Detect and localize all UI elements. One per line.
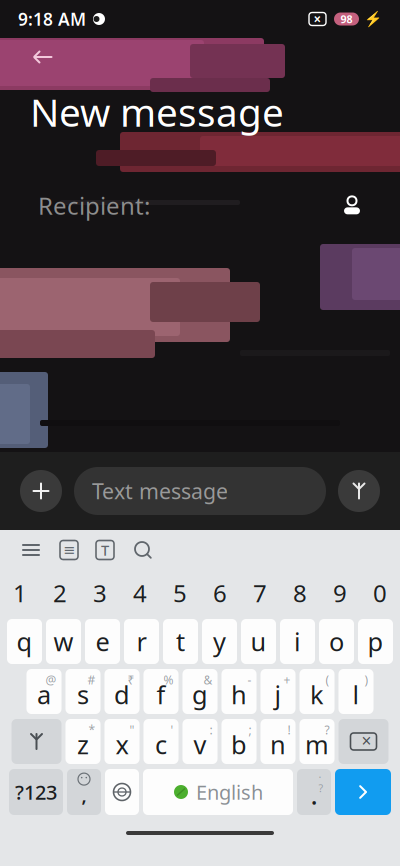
- staticText: v: [193, 728, 206, 761]
- button[interactable]: -: [221, 669, 256, 714]
- staticText: f: [156, 678, 165, 711]
- button[interactable]: Send: [335, 769, 391, 815]
- button[interactable]: %: [143, 669, 178, 714]
- staticText: 1: [13, 577, 27, 609]
- staticText: 5: [173, 577, 187, 609]
- button[interactable]: p: [358, 619, 393, 664]
- staticText: 2: [53, 577, 67, 609]
- button[interactable]: i: [280, 619, 315, 664]
- staticText: d: [114, 678, 130, 711]
- staticText: #: [87, 672, 95, 688]
- staticText: o: [329, 625, 344, 658]
- button[interactable]: +: [260, 669, 295, 714]
- button[interactable]: (: [299, 669, 334, 714]
- button[interactable]: ;: [221, 719, 256, 764]
- staticText: z: [77, 728, 89, 761]
- button[interactable]: 8: [280, 573, 320, 613]
- button[interactable]: :: [182, 719, 217, 764]
- button[interactable]: 5: [160, 573, 200, 613]
- staticText: 3: [93, 577, 107, 609]
- button[interactable]: &: [182, 669, 217, 714]
- staticText: Recipient:: [38, 189, 150, 221]
- button[interactable]: Search: [132, 539, 154, 561]
- staticText: 6: [213, 577, 227, 609]
- button[interactable]: ": [104, 719, 139, 764]
- button[interactable]: 4: [120, 573, 160, 613]
- staticText: &: [203, 672, 212, 688]
- button[interactable]: .: [297, 769, 331, 815]
- button[interactable]: #: [65, 669, 100, 714]
- staticText: ⚡: [364, 11, 382, 27]
- button[interactable]: y: [202, 619, 237, 664]
- staticText: p: [367, 625, 383, 658]
- button[interactable]: ): [338, 669, 373, 714]
- button[interactable]: Add attachment: [20, 470, 62, 512]
- button[interactable]: u: [241, 619, 276, 664]
- staticText: !: [287, 722, 290, 738]
- staticText: Text message: [92, 477, 228, 505]
- button[interactable]: q: [7, 619, 42, 664]
- staticText: x: [115, 728, 128, 761]
- button[interactable]: English: [143, 769, 293, 815]
- button[interactable]: o: [319, 619, 354, 664]
- staticText: :: [209, 722, 212, 738]
- button[interactable]: Clipboard: [60, 540, 78, 559]
- staticText: ?: [324, 722, 329, 738]
- button[interactable]: Symbols: [9, 769, 63, 815]
- button[interactable]: Menu: [20, 540, 42, 560]
- button[interactable]: ': [143, 719, 178, 764]
- staticText: u: [250, 625, 266, 658]
- staticText: ': [170, 722, 173, 738]
- staticText: %: [163, 672, 173, 688]
- button[interactable]: Emoji: [67, 769, 101, 815]
- button[interactable]: ?: [299, 719, 334, 764]
- staticText: ×: [361, 729, 371, 752]
- staticText: 9: [333, 577, 347, 609]
- button[interactable]: 1: [0, 573, 40, 613]
- button[interactable]: r: [124, 619, 159, 664]
- button[interactable]: *: [65, 719, 100, 764]
- staticText: .?: [318, 767, 323, 795]
- staticText: a: [37, 678, 51, 711]
- staticText: ×: [313, 10, 321, 28]
- button[interactable]: Recipient:: [0, 183, 400, 227]
- staticText: 9:18 AM: [18, 7, 86, 30]
- button[interactable]: Text editing: [96, 540, 114, 559]
- button[interactable]: Back: [18, 38, 68, 76]
- staticText: 98: [340, 12, 352, 26]
- staticText: ;: [248, 722, 251, 738]
- staticText: y: [213, 625, 226, 658]
- button[interactable]: 3: [80, 573, 120, 613]
- staticText: ?123: [15, 779, 57, 805]
- button[interactable]: e: [85, 619, 120, 664]
- button[interactable]: t: [163, 619, 198, 664]
- button[interactable]: @: [26, 669, 61, 714]
- staticText: ): [364, 672, 368, 688]
- button[interactable]: Send: [338, 470, 380, 512]
- button[interactable]: 6: [200, 573, 240, 613]
- button[interactable]: Text message: [74, 467, 326, 515]
- staticText: ": [129, 722, 134, 738]
- staticText: i: [294, 625, 301, 658]
- staticText: ,: [81, 783, 86, 808]
- button[interactable]: 0: [360, 573, 400, 613]
- button[interactable]: 2: [40, 573, 80, 613]
- staticText: m: [305, 728, 329, 761]
- staticText: 0: [373, 577, 387, 609]
- staticText: 7: [253, 577, 267, 609]
- staticText: ≡: [63, 542, 75, 558]
- button[interactable]: 7: [240, 573, 280, 613]
- staticText: -: [247, 672, 251, 688]
- staticText: ₹: [127, 672, 134, 688]
- button[interactable]: Backspace: [338, 719, 388, 764]
- button[interactable]: !: [260, 719, 295, 764]
- button[interactable]: [11, 719, 61, 764]
- staticText: (: [325, 672, 329, 688]
- button[interactable]: 9: [320, 573, 360, 613]
- staticText: b: [231, 728, 247, 761]
- button[interactable]: ₹: [104, 669, 139, 714]
- button[interactable]: Change language: [105, 769, 139, 815]
- staticText: T: [101, 540, 109, 560]
- staticText: s: [77, 678, 89, 711]
- button[interactable]: w: [46, 619, 81, 664]
